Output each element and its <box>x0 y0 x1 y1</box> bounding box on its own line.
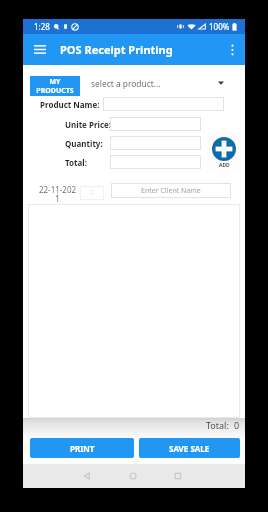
staticText: select a product... <box>91 78 161 89</box>
staticText: Unite Price: <box>65 119 112 130</box>
button[interactable] <box>110 136 201 150</box>
button[interactable]: Recent apps <box>167 465 189 487</box>
button[interactable]: Home <box>122 465 144 487</box>
button[interactable]: SAVE SALE <box>139 438 240 458</box>
button[interactable]: 2 <box>80 186 104 200</box>
staticText: 22-11-2021 01:28:15 <box>37 184 78 204</box>
staticText: Total: <box>206 419 229 431</box>
button[interactable]: select a product... <box>91 72 224 94</box>
staticText: 1:28 <box>34 21 50 32</box>
button[interactable] <box>110 117 201 131</box>
staticText: 100% <box>209 21 230 32</box>
staticText: PRINT <box>70 443 95 454</box>
staticText: Enter Client Name <box>141 186 201 196</box>
button[interactable]: MY PRODUCTS <box>30 76 80 96</box>
button[interactable]: Enter Client Name <box>111 183 231 198</box>
button[interactable]: PRINT <box>30 438 134 458</box>
button[interactable]: Menu <box>26 34 54 65</box>
button[interactable] <box>110 155 201 169</box>
staticText: Product Name: <box>40 99 100 110</box>
button[interactable]: Add product <box>207 134 240 172</box>
staticText: Quantity: <box>65 138 103 149</box>
staticText: ADD <box>219 162 230 169</box>
staticText: SAVE SALE <box>169 443 210 454</box>
button[interactable]: Back <box>76 465 98 487</box>
staticText: 0 <box>234 419 240 431</box>
button[interactable] <box>103 97 224 111</box>
staticText: MY PRODUCTS <box>36 77 74 95</box>
staticText: POS Receipt Printing <box>60 42 173 57</box>
staticText: 2 <box>90 188 95 198</box>
button[interactable]: More options <box>219 34 245 65</box>
staticText: Total: <box>65 157 87 168</box>
